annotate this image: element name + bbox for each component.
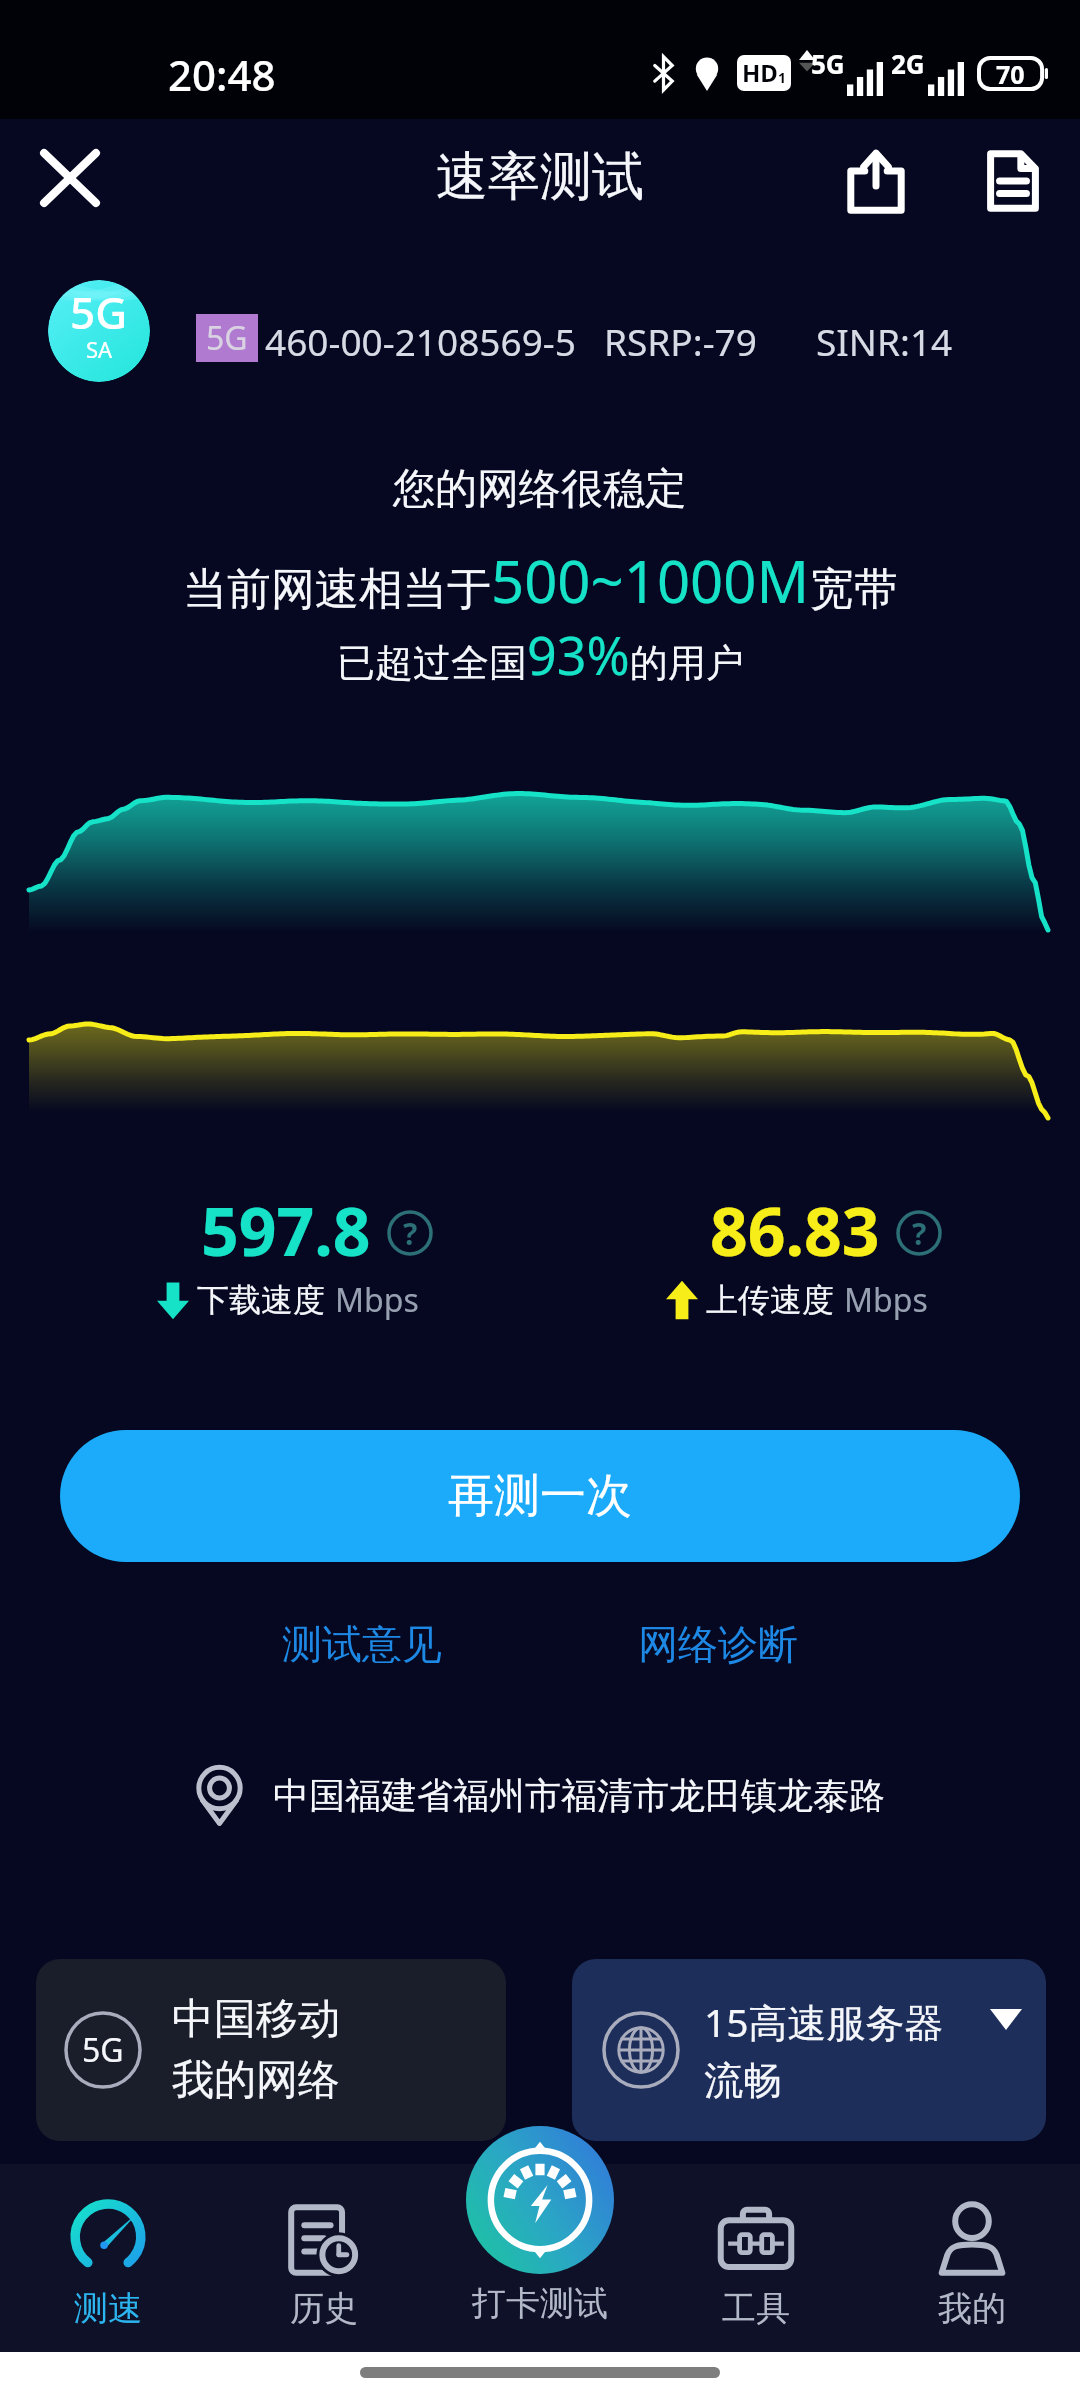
button[interactable]: 5G SA — [48, 280, 150, 382]
staticText: 5G — [70, 282, 128, 342]
staticText: 您的网络很稳定 — [0, 463, 1080, 516]
staticText: 1 — [778, 68, 787, 87]
button[interactable]: 5G — [36, 1959, 506, 2141]
button[interactable]: 我的 — [864, 2164, 1080, 2352]
staticText: 打卡测试 — [472, 2282, 608, 2325]
staticText: 86.83 — [710, 1185, 880, 1275]
staticText: SA — [86, 334, 113, 364]
staticText: 网络诊断 — [638, 1619, 798, 1669]
button[interactable]: 上传速度 说明 — [894, 1208, 944, 1258]
staticText: HD — [742, 56, 778, 89]
staticText: 500~1000M — [491, 541, 810, 620]
staticText: ? — [912, 1213, 927, 1254]
button[interactable]: 测试报告 — [972, 140, 1054, 222]
staticText: Mbps — [844, 1278, 928, 1322]
staticText: 15高速服务器 — [704, 1995, 944, 2048]
staticText: ? — [403, 1213, 418, 1254]
staticText: 宽带 — [810, 562, 898, 617]
staticText: 5G — [811, 46, 845, 81]
button[interactable]: 工具 — [648, 2164, 864, 2352]
staticText: 5G — [206, 316, 248, 360]
staticText: 我的 — [938, 2287, 1006, 2330]
staticText: 上传速度 — [706, 1280, 834, 1320]
staticText: 历史 — [290, 2287, 358, 2330]
button[interactable]: 网络诊断 — [618, 1600, 818, 1688]
staticText: 2G — [891, 46, 925, 81]
staticText: RSRP:-79 — [604, 316, 757, 366]
staticText: 再测一次 — [448, 1467, 632, 1525]
staticText: 测试意见 — [282, 1619, 442, 1669]
staticText: 流畅 — [704, 2056, 782, 2105]
button[interactable]: 关闭 — [30, 138, 110, 218]
staticText: 5G — [82, 2028, 124, 2072]
staticText: Mbps — [335, 1278, 419, 1322]
button[interactable]: 历史 — [216, 2164, 432, 2352]
staticText: 已超过全国 — [337, 639, 527, 687]
staticText: 的用户 — [630, 639, 744, 687]
button[interactable]: 测速 — [0, 2164, 216, 2352]
staticText: SINR:14 — [816, 316, 953, 366]
button[interactable]: 分享 — [835, 140, 917, 222]
staticText: 速率测试 — [0, 144, 1080, 210]
staticText: 597.8 — [201, 1185, 371, 1275]
staticText: 下载速度 — [197, 1280, 325, 1320]
button[interactable]: 测试意见 — [262, 1600, 462, 1688]
staticText: 工具 — [722, 2287, 790, 2330]
staticText: 93% — [527, 619, 630, 690]
staticText: 中国福建省福州市福清市龙田镇龙泰路 — [273, 1773, 885, 1818]
button[interactable]: 中国福建省福州市福清市龙田镇龙泰路 — [0, 1766, 1080, 1824]
button[interactable]: 打卡测试 — [432, 2164, 648, 2352]
button[interactable]: 15高速服务器 — [572, 1959, 1046, 2141]
button[interactable]: 下载速度 说明 — [385, 1208, 435, 1258]
button[interactable]: 打卡测试 — [466, 2126, 614, 2274]
staticText: 我的网络 — [172, 2054, 340, 2107]
staticText: 20:48 — [168, 46, 276, 103]
staticText: 中国移动 — [172, 1993, 340, 2046]
staticText: 460-00-2108569-5 — [265, 316, 576, 366]
button[interactable]: 再测一次 — [60, 1430, 1020, 1562]
staticText: 当前网速相当于 — [183, 562, 491, 617]
staticText: 70 — [996, 57, 1025, 90]
staticText: 测速 — [74, 2287, 142, 2330]
